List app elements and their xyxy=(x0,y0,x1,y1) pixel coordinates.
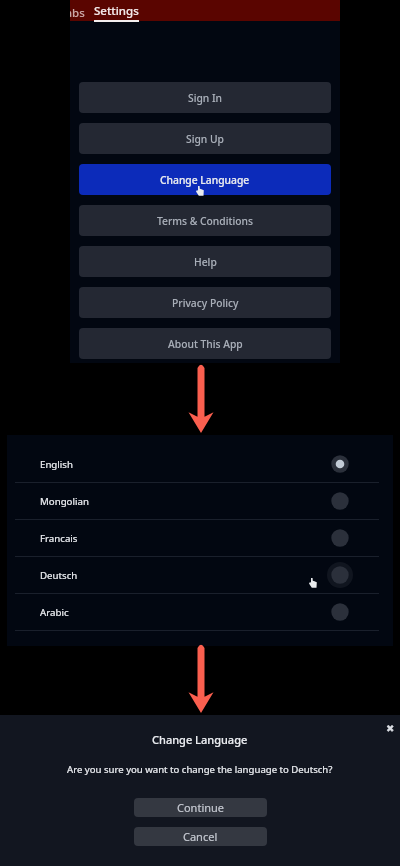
staticText: Continue xyxy=(177,800,225,815)
staticText: Terms & Conditions xyxy=(157,214,253,228)
staticText: Are you sure you want to change the lang… xyxy=(67,763,333,776)
button[interactable]: Terms & Conditions xyxy=(79,205,331,236)
button[interactable]: Continue xyxy=(134,798,267,817)
staticText: About This App xyxy=(168,337,243,351)
button[interactable]: About This App xyxy=(79,328,331,359)
staticText: Sign Up xyxy=(186,132,224,146)
staticText: Settings xyxy=(94,3,139,19)
staticText: Sign In xyxy=(188,91,223,105)
button[interactable]: Arabic xyxy=(7,594,393,630)
button[interactable]: Close xyxy=(382,720,398,736)
button[interactable]: Help xyxy=(79,246,331,277)
staticText: ✖ xyxy=(386,723,395,733)
button[interactable]: Privacy Policy xyxy=(79,287,331,318)
staticText: Privacy Policy xyxy=(172,296,239,310)
button[interactable]: Deutsch xyxy=(7,557,393,593)
button[interactable]: Sign In xyxy=(79,82,331,113)
button[interactable]: Change Language xyxy=(79,164,331,195)
staticText: Mongolian xyxy=(40,495,89,508)
staticText: Francais xyxy=(40,532,78,545)
button[interactable]: Cancel xyxy=(134,827,267,846)
staticText: Cancel xyxy=(183,829,218,844)
button[interactable]: English xyxy=(7,446,393,482)
button[interactable]: Sign Up xyxy=(79,123,331,154)
staticText: Arabic xyxy=(40,606,69,619)
staticText: Help xyxy=(194,255,217,269)
staticText: Change Language xyxy=(152,732,248,747)
button[interactable]: Tabs xyxy=(70,5,85,21)
staticText: Deutsch xyxy=(40,569,78,582)
staticText: English xyxy=(40,458,73,471)
button[interactable]: Settings xyxy=(94,3,139,22)
button[interactable]: Mongolian xyxy=(7,483,393,519)
button[interactable]: Francais xyxy=(7,520,393,556)
staticText: Change Language xyxy=(160,173,250,187)
staticText: Tabs xyxy=(70,5,85,21)
